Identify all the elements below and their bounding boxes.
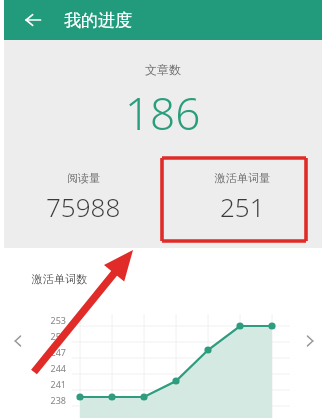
button[interactable]: Previous [6, 329, 30, 353]
staticText: 激活单词数 [32, 272, 87, 286]
staticText: 75988 [46, 189, 121, 224]
staticText: 247 [50, 346, 66, 358]
staticText: 250 [50, 330, 66, 342]
staticText: 186 [125, 83, 201, 143]
staticText: 文章数 [145, 62, 181, 77]
staticText: 我的进度 [64, 10, 132, 31]
button[interactable]: Next [298, 329, 322, 353]
staticText: 241 [50, 378, 66, 390]
button[interactable]: 激活单词量 [163, 171, 322, 224]
button[interactable]: Back [18, 5, 48, 35]
staticText: 238 [50, 394, 66, 406]
staticText: 阅读量 [67, 171, 100, 185]
staticText: 244 [50, 362, 66, 374]
staticText: 激活单词量 [215, 171, 270, 185]
staticText: 251 [220, 189, 265, 224]
staticText: 253 [50, 314, 66, 326]
button[interactable]: 阅读量 [4, 171, 163, 224]
